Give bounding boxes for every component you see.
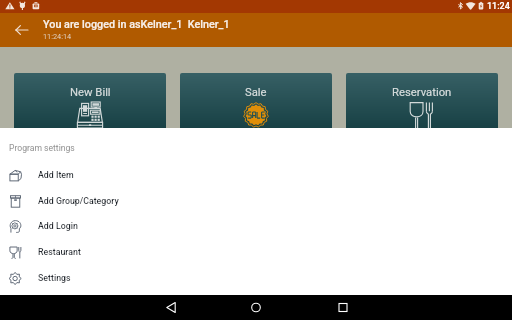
staticText: Add Login xyxy=(38,221,78,231)
button[interactable]: Reservation xyxy=(346,73,498,131)
staticText: Settings xyxy=(38,273,71,283)
button[interactable]: Sale xyxy=(180,73,332,131)
button[interactable]: Restaurant xyxy=(0,239,512,265)
staticText: Restaurant xyxy=(38,247,81,257)
staticText: Add Group/Category xyxy=(38,196,119,206)
staticText: 11:24 xyxy=(487,1,510,12)
staticText: Reservation xyxy=(392,86,452,99)
button[interactable]: Settings xyxy=(0,265,512,291)
button[interactable]: Home xyxy=(243,295,269,320)
staticText: Add Item xyxy=(38,170,74,180)
staticText: Sale xyxy=(245,86,267,99)
button[interactable]: Navigate up xyxy=(9,17,35,43)
staticText: New Bill xyxy=(70,86,111,99)
button[interactable]: Add Group/Category xyxy=(0,188,512,214)
button[interactable]: New Bill xyxy=(14,73,166,131)
button[interactable]: Add Login xyxy=(0,213,512,239)
button[interactable]: Back xyxy=(158,295,184,320)
staticText: Program settings xyxy=(9,143,75,153)
button[interactable]: Add Item xyxy=(0,162,512,188)
button[interactable]: Recent apps xyxy=(330,295,356,320)
staticText: 11:24:14 xyxy=(43,32,72,41)
staticText: You are logged in asKelner_1 Kelner_1 xyxy=(43,18,230,31)
